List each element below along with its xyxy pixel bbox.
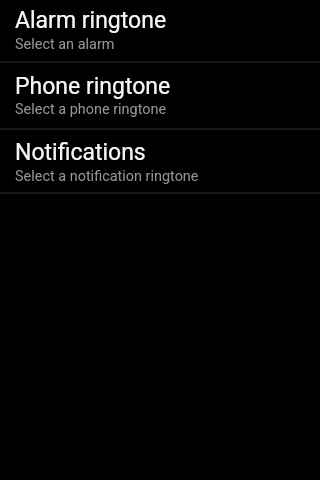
button[interactable]: Alarm ringtone [0,0,320,61]
staticText: Select an alarm [15,36,115,53]
staticText: Notifications [15,139,146,166]
staticText: Select a notification ringtone [15,168,199,185]
staticText: Select a phone ringtone [15,101,167,118]
staticText: Phone ringtone [15,73,171,100]
staticText: Alarm ringtone [15,7,167,34]
button[interactable]: Phone ringtone [0,63,320,128]
button[interactable]: Notifications [0,130,320,192]
